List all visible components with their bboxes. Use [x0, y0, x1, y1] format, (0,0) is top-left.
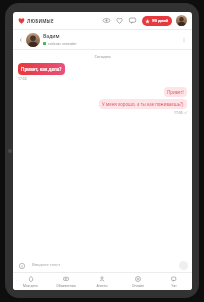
button[interactable]: Вадим [43, 33, 179, 46]
staticText: 99 дней [152, 18, 169, 24]
staticText: сейчас онлайн [48, 41, 77, 46]
button[interactable]: 99 дней [142, 16, 172, 26]
staticText: Онлайн [132, 284, 144, 288]
staticText: Объявления [56, 284, 76, 288]
button[interactable]: Back [17, 36, 25, 44]
button[interactable]: Чат [156, 273, 192, 290]
staticText: У меня хорошо, а ты как поживаешь?) [102, 101, 184, 107]
button[interactable]: More options [179, 35, 188, 44]
staticText: Привет, как дела? [21, 66, 62, 72]
button[interactable]: Send [179, 261, 188, 270]
button[interactable]: Мой день [13, 273, 48, 290]
button[interactable]: У меня хорошо, а ты как поживаешь?) [99, 99, 187, 109]
staticText: Мой день [23, 284, 38, 288]
button[interactable]: Messages [128, 16, 137, 25]
button[interactable]: Онлайн [120, 273, 156, 290]
button[interactable]: Emoji [17, 261, 26, 270]
button[interactable]: Profile [176, 15, 187, 26]
button[interactable]: Contact avatar [26, 33, 40, 47]
staticText: ЛЮБИМЫЕ [27, 18, 54, 24]
button[interactable]: Eye [102, 16, 111, 25]
button[interactable]: Привет! [164, 87, 187, 97]
staticText: Введите текст [32, 262, 61, 268]
staticText: Анкеты [96, 284, 108, 288]
button[interactable]: Favorites [115, 16, 124, 25]
staticText: 17:02 [18, 76, 27, 81]
staticText: Привет! [167, 89, 184, 95]
button[interactable]: Объявления [48, 273, 84, 290]
button[interactable]: ЛЮБИМЫЕ [18, 17, 54, 24]
button[interactable]: Анкеты [84, 273, 120, 290]
staticText: Вадим [43, 33, 60, 40]
button[interactable]: Привет, как дела? [18, 63, 65, 75]
staticText: 17:05 [174, 110, 183, 115]
button[interactable]: Введите текст [28, 260, 176, 270]
staticText: Сегодня [94, 54, 111, 59]
staticText: Чат [171, 284, 177, 288]
